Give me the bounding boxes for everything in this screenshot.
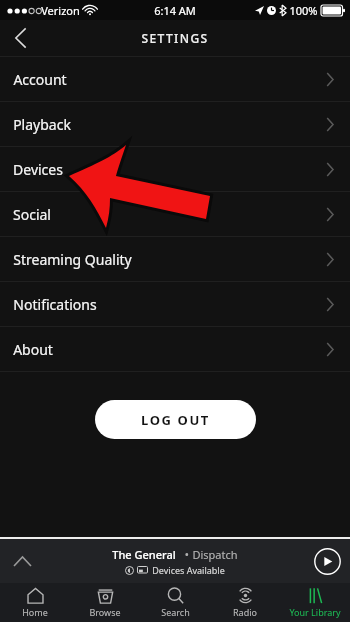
button[interactable]: Browse [70,583,140,622]
staticText: Account [13,70,67,89]
staticText: Devices Available [152,564,225,576]
button[interactable]: Your Library [280,583,350,622]
button[interactable]: Playback [0,102,350,147]
staticText: Dispatch [192,547,238,562]
staticText: Notifications [13,295,97,314]
staticText: LOG OUT [141,411,210,429]
button[interactable]: LOG OUT [95,400,256,439]
staticText: About [13,340,53,359]
button[interactable]: Home [0,583,70,622]
button[interactable]: Back [0,20,40,56]
staticText: Social [13,205,51,224]
staticText: Your Library [289,606,341,618]
button[interactable]: Streaming Quality [0,237,350,282]
staticText: Search [161,606,190,618]
button[interactable]: Account [0,57,350,102]
button[interactable]: About [0,327,350,372]
button[interactable]: Notifications [0,282,350,327]
staticText: Devices [13,160,63,179]
staticText: Browse [89,606,121,618]
button[interactable]: Social [0,192,350,237]
button[interactable]: Play [313,547,341,575]
staticText: Streaming Quality [13,250,132,269]
staticText: Home [22,606,48,618]
button[interactable]: Devices [0,147,350,192]
staticText: SETTINGS [141,30,209,46]
staticText: • [176,547,192,562]
button[interactable]: Expand player [0,539,44,583]
staticText: Verizon [41,3,80,18]
staticText: 6:14 AM [154,3,196,18]
staticText: Radio [233,606,257,618]
button[interactable]: Radio [210,583,280,622]
staticText: 100% [289,3,318,18]
staticText: The General [112,547,176,562]
staticText: Playback [13,115,71,134]
button[interactable]: Search [140,583,210,622]
